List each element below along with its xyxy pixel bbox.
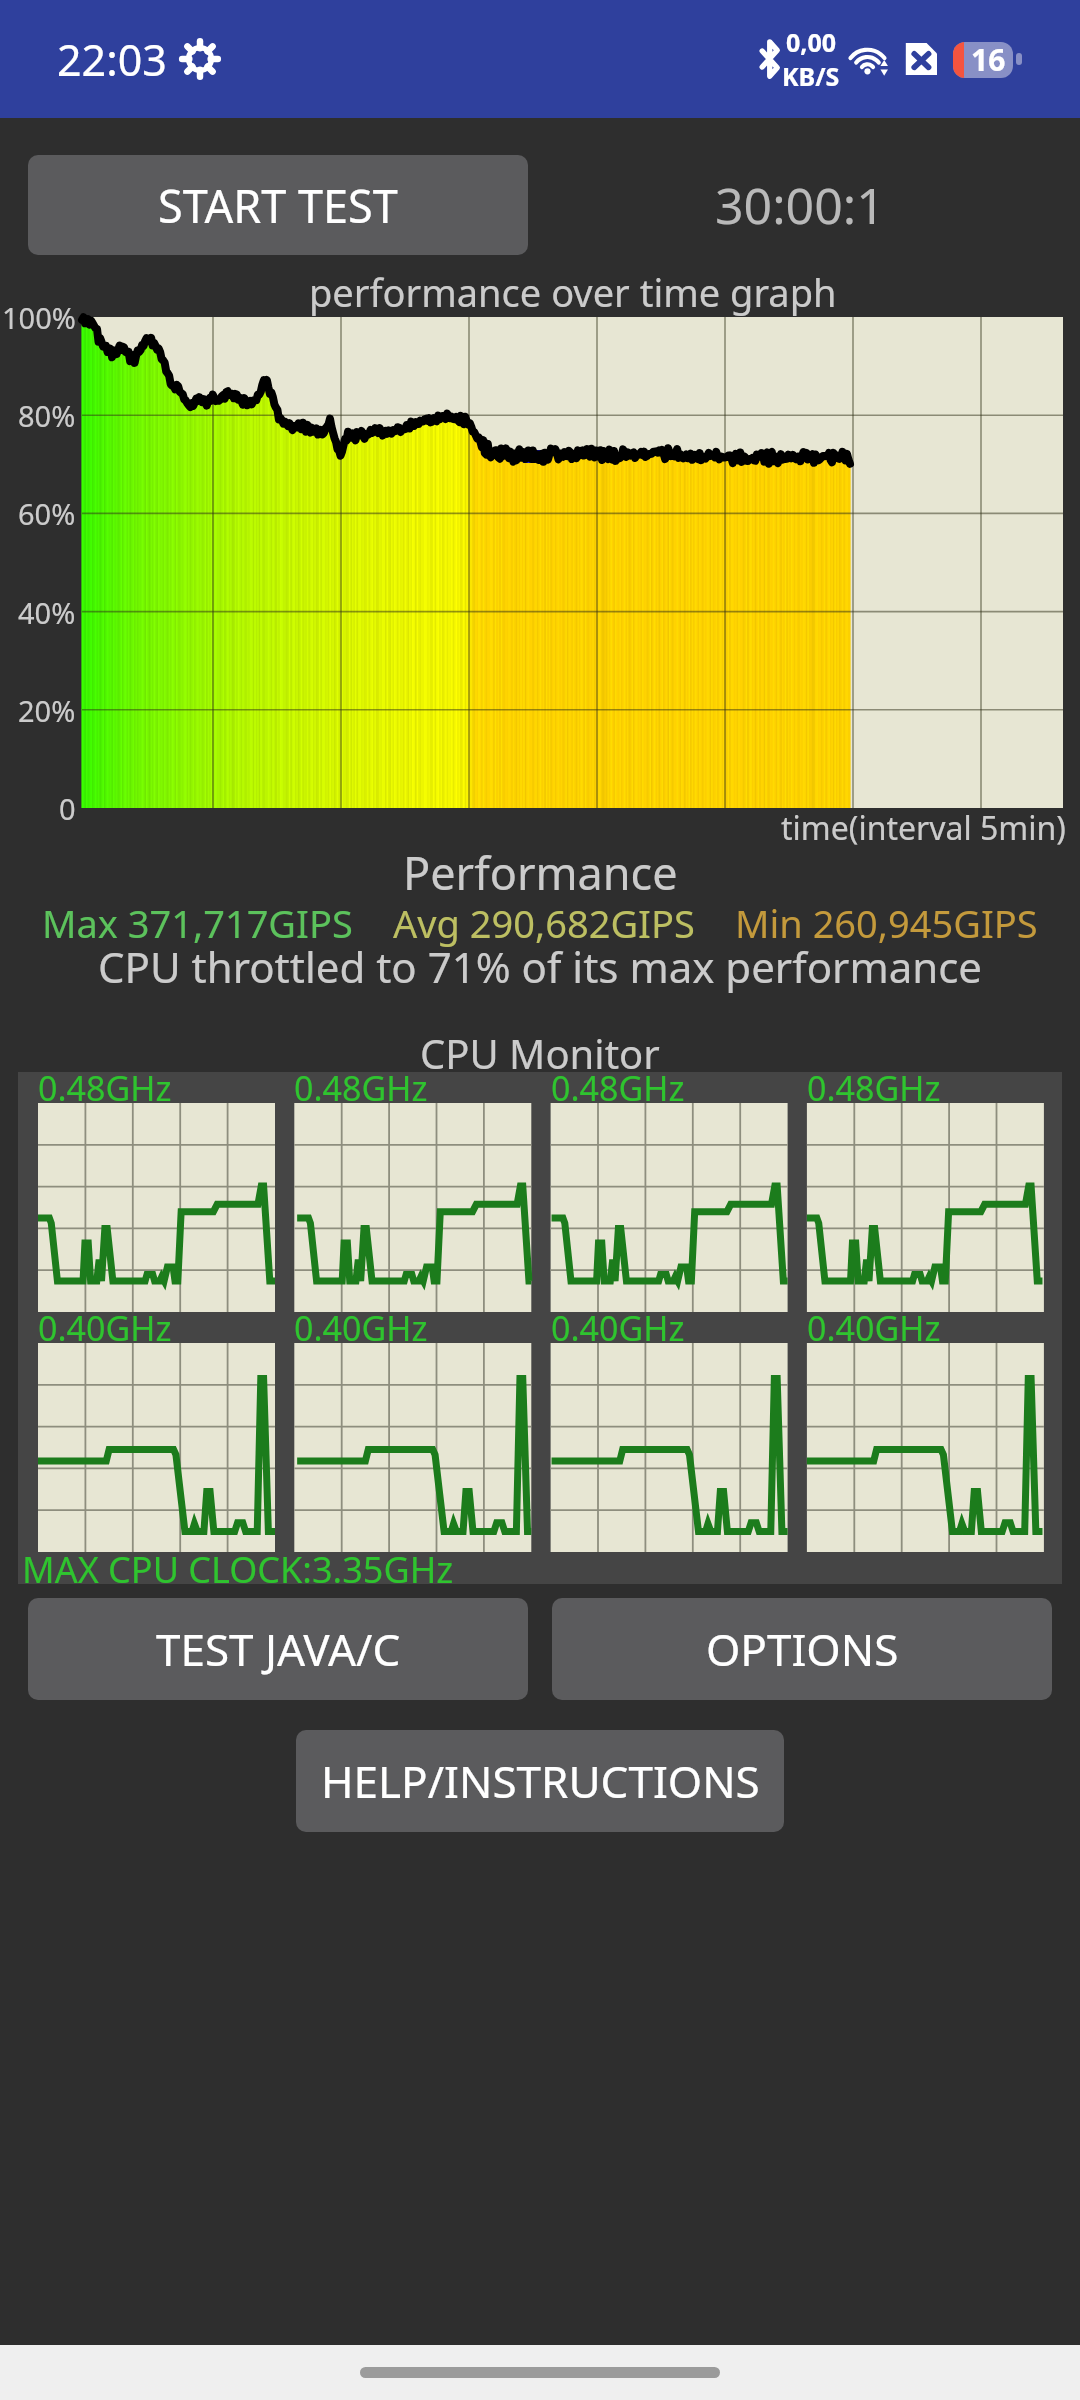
staticText: 0.40GHz: [807, 1305, 941, 1351]
staticText: KB/S: [782, 59, 840, 93]
staticText: 30:00:1: [715, 171, 885, 239]
staticText: 80%: [18, 396, 76, 435]
button[interactable]: TEST JAVA/C: [28, 1598, 528, 1700]
button[interactable]: START TEST: [28, 155, 528, 255]
staticText: TEST JAVA/C: [156, 1619, 401, 1679]
staticText: 0.48GHz: [807, 1065, 941, 1111]
staticText: 0.48GHz: [294, 1065, 428, 1111]
button[interactable]: Settings: [181, 40, 219, 78]
staticText: 20%: [18, 691, 76, 730]
staticText: Min 260,945GIPS: [735, 897, 1038, 949]
staticText: 0,00: [786, 25, 837, 59]
staticText: 16: [971, 39, 1006, 80]
staticText: performance over time graph: [309, 266, 837, 318]
staticText: 0: [59, 789, 76, 828]
staticText: Avg 290,682GIPS: [393, 897, 695, 949]
staticText: 0.40GHz: [38, 1305, 172, 1351]
staticText: MAX CPU CLOCK:3.35GHz: [22, 1545, 454, 1594]
other: Bluetooth: [756, 39, 784, 79]
staticText: 0.40GHz: [294, 1305, 428, 1351]
other: No SIM card: [901, 39, 941, 79]
staticText: 60%: [18, 494, 76, 533]
staticText: 0.40GHz: [551, 1305, 685, 1351]
staticText: 0.48GHz: [38, 1065, 172, 1111]
staticText: HELP/INSTRUCTIONS: [321, 1751, 760, 1811]
button[interactable]: OPTIONS: [552, 1598, 1052, 1700]
staticText: Performance: [403, 842, 678, 903]
staticText: 40%: [18, 593, 76, 632]
staticText: OPTIONS: [706, 1619, 899, 1679]
staticText: 22:03: [57, 30, 167, 89]
staticText: 0.48GHz: [551, 1065, 685, 1111]
staticText: CPU throttled to 71% of its max performa…: [98, 938, 983, 995]
staticText: 100%: [2, 298, 76, 337]
staticText: Max 371,717GIPS: [42, 897, 353, 949]
staticText: CPU Monitor: [420, 1026, 660, 1080]
button[interactable]: HELP/INSTRUCTIONS: [296, 1730, 784, 1832]
staticText: time(interval 5min): [781, 806, 1066, 850]
staticText: START TEST: [158, 175, 398, 236]
other: Wi-Fi: [849, 37, 893, 81]
